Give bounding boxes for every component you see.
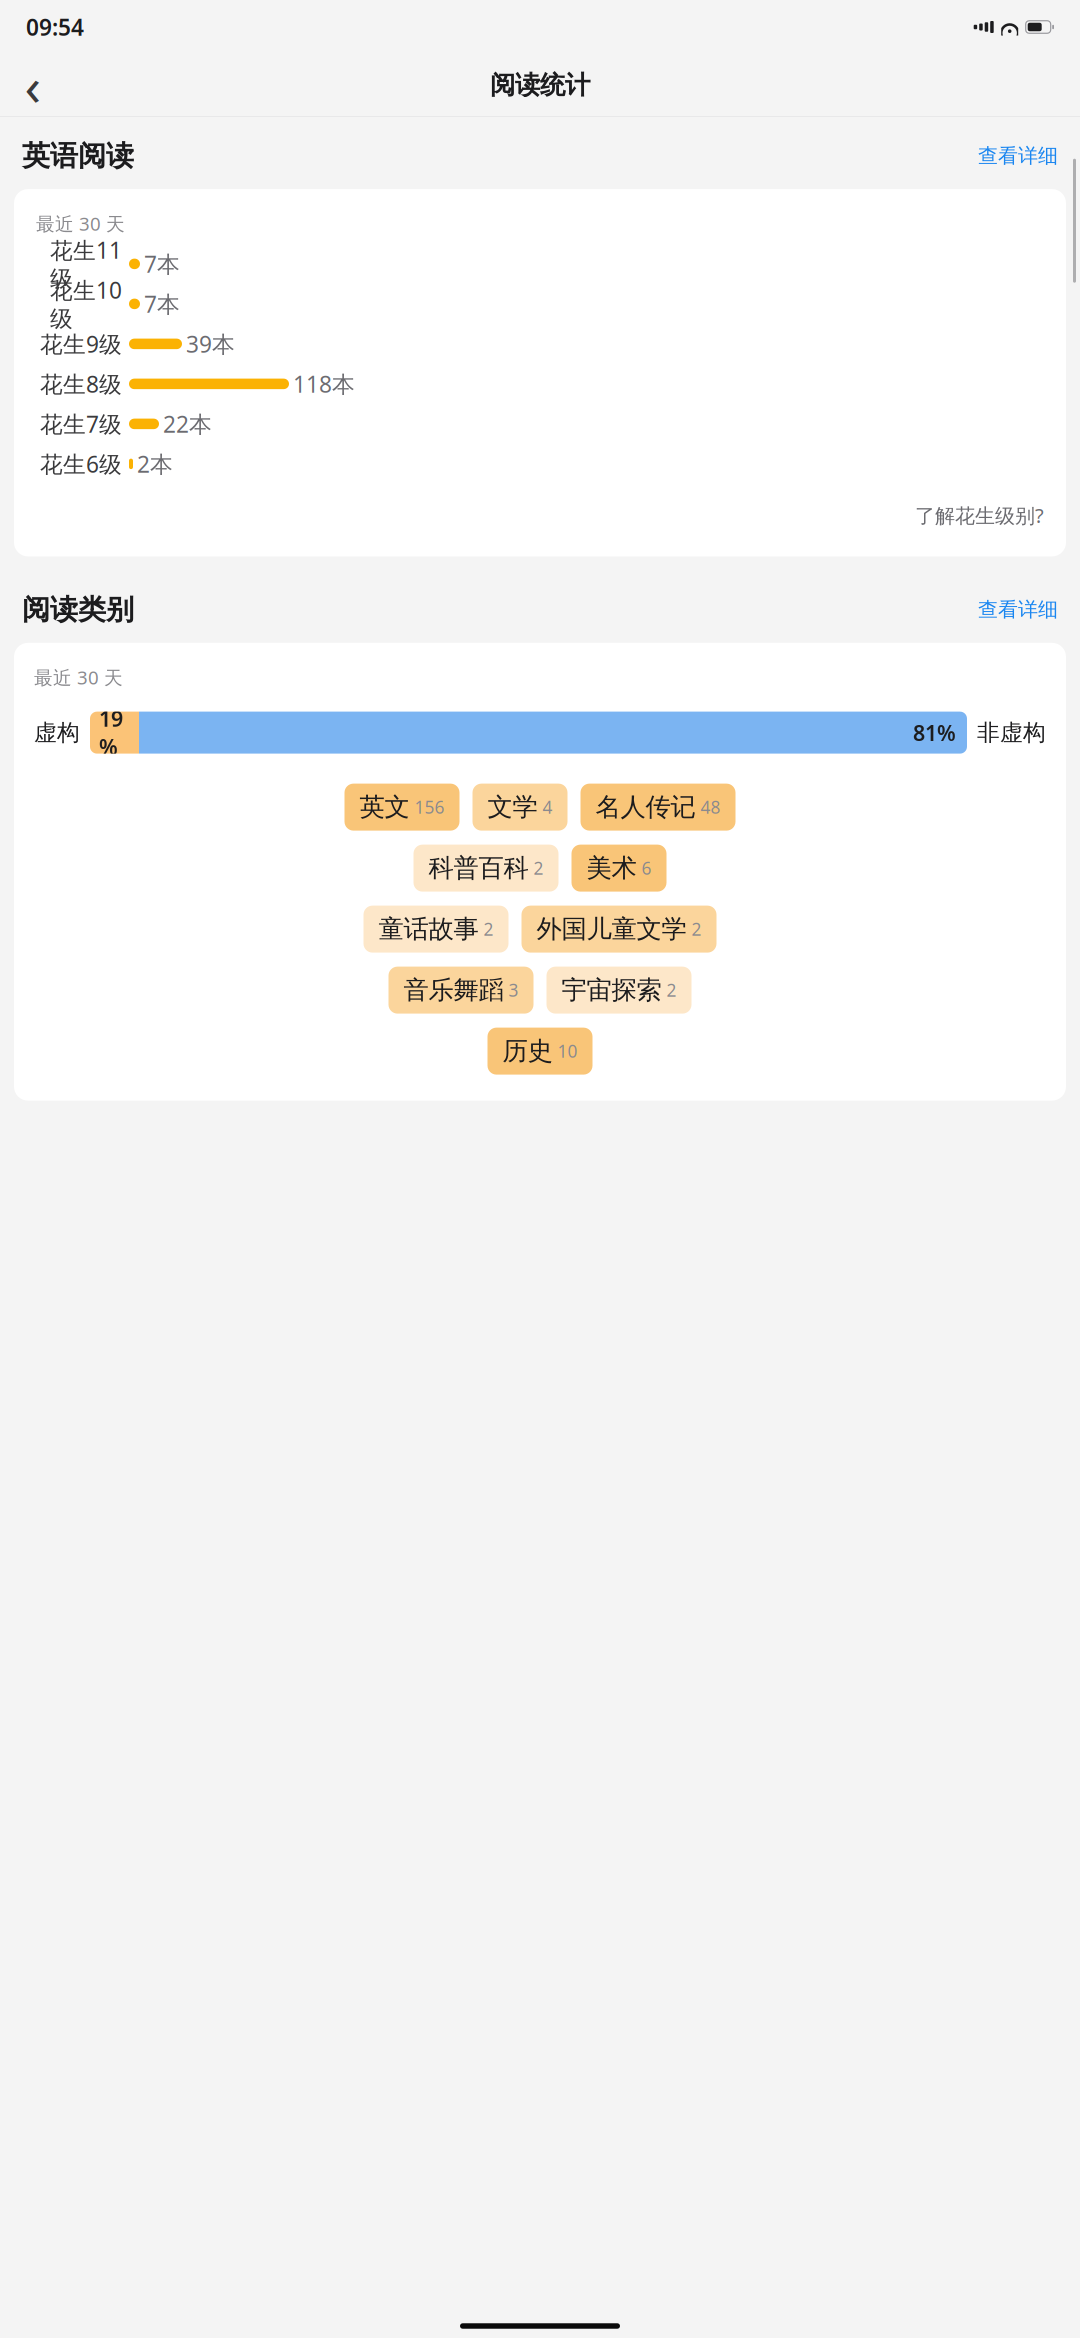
staticText: 118本 <box>293 369 355 399</box>
staticText: 英文 <box>359 792 409 823</box>
staticText: 童话故事 <box>378 914 478 945</box>
staticText: 美术 <box>586 853 636 884</box>
staticText: 39本 <box>186 329 235 359</box>
staticText: 历史 <box>502 1036 552 1067</box>
staticText: 花生11级 <box>50 235 122 293</box>
button[interactable]: 历史 <box>487 1028 592 1075</box>
button[interactable]: 查看详细 <box>978 593 1058 626</box>
staticText: 虚构 <box>34 719 80 746</box>
staticText: 10 <box>557 1040 577 1063</box>
staticText: 阅读统计 <box>490 69 590 100</box>
staticText: 阅读类别 <box>22 592 134 627</box>
button[interactable]: 宇宙探索 <box>546 967 691 1014</box>
staticText: 花生6级 <box>40 449 122 479</box>
staticText: 花生8级 <box>40 369 122 399</box>
staticText: 非虚构 <box>977 719 1046 746</box>
staticText: 4 <box>542 796 552 819</box>
button[interactable]: 查看详细 <box>978 140 1058 172</box>
staticText: 花生10级 <box>50 275 122 333</box>
button[interactable]: 外国儿童文学 <box>521 906 716 953</box>
staticText: 3 <box>508 979 518 1002</box>
staticText: 英语阅读 <box>22 139 134 173</box>
button[interactable]: 音乐舞蹈 <box>388 967 533 1014</box>
staticText: 2本 <box>137 449 173 479</box>
button[interactable]: 童话故事 <box>363 906 508 953</box>
staticText: 6 <box>641 857 651 880</box>
staticText: 科普百科 <box>428 853 528 884</box>
button[interactable]: 返回 <box>10 62 56 108</box>
staticText: 22本 <box>163 409 212 439</box>
staticText: 花生9级 <box>40 329 122 359</box>
staticText: 81% <box>913 718 956 747</box>
staticText: 名人传记 <box>595 792 695 823</box>
staticText: ‹ <box>24 50 41 120</box>
staticText: 音乐舞蹈 <box>403 975 503 1006</box>
staticText: 花生7级 <box>40 409 122 439</box>
button[interactable]: 了解花生级别? <box>915 498 1044 532</box>
button[interactable]: 美术 <box>571 845 666 892</box>
staticText: 查看详细 <box>978 144 1058 168</box>
staticText: 7本 <box>144 249 180 279</box>
staticText: 19% <box>99 704 123 761</box>
button[interactable]: 文学 <box>472 784 567 831</box>
staticText: 48 <box>700 796 720 819</box>
button[interactable]: 科普百科 <box>413 845 558 892</box>
staticText: 了解花生级别? <box>915 502 1044 528</box>
staticText: 2 <box>666 979 676 1002</box>
button[interactable]: 英文 <box>344 784 459 831</box>
staticText: 查看详细 <box>978 597 1058 622</box>
staticText: 156 <box>414 796 444 819</box>
staticText: 2 <box>691 918 701 941</box>
staticText: 最近 30 天 <box>36 211 125 236</box>
staticText: 外国儿童文学 <box>536 914 686 945</box>
staticText: 7本 <box>144 289 180 319</box>
staticText: 09:54 <box>26 12 84 42</box>
staticText: 最近 30 天 <box>34 665 123 690</box>
staticText: 2 <box>483 918 493 941</box>
staticText: 2 <box>533 857 543 880</box>
staticText: 宇宙探索 <box>561 975 661 1006</box>
staticText: 文学 <box>487 792 537 823</box>
button[interactable]: 名人传记 <box>580 784 735 831</box>
